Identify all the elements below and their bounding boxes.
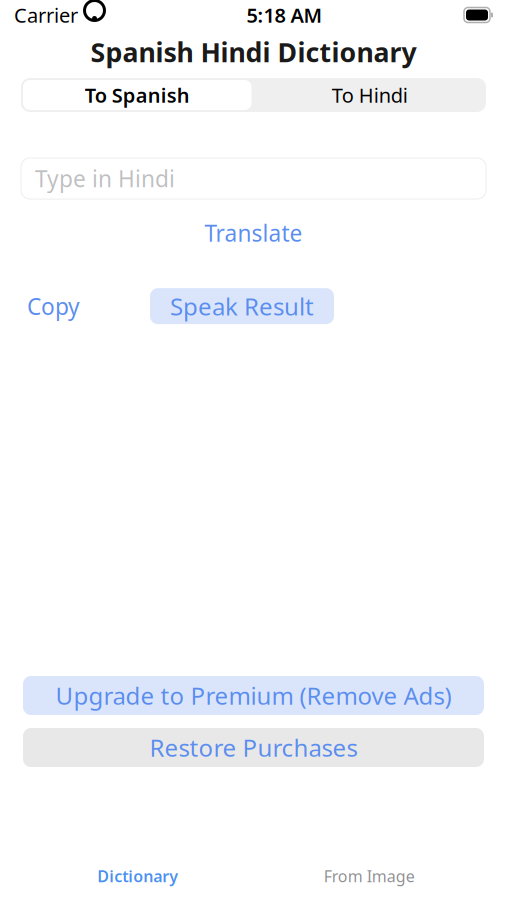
staticText: Spanish Hindi Dictionary [90, 34, 416, 70]
button[interactable]: Dictionary [22, 852, 253, 900]
staticText: To Spanish [85, 82, 190, 108]
staticText: Carrier [14, 2, 78, 28]
staticText: Copy [27, 291, 80, 321]
button[interactable]: Translate [194, 212, 312, 254]
button[interactable]: Speak Result [150, 288, 334, 324]
staticText: Restore Purchases [149, 732, 357, 763]
staticText: Speak Result [170, 290, 314, 322]
staticText: Translate [204, 218, 302, 248]
button[interactable]: To Hindi [253, 78, 486, 112]
staticText: Type in Hindi [35, 163, 175, 193]
button[interactable]: Copy [23, 283, 84, 329]
staticText: From Image [324, 865, 415, 887]
button[interactable]: Restore Purchases [23, 728, 484, 767]
button[interactable]: Upgrade to Premium (Remove Ads) [23, 676, 484, 715]
staticText: 5:18 AM [246, 2, 322, 28]
button[interactable]: To Spanish [21, 78, 253, 112]
staticText: Dictionary [97, 865, 178, 887]
button[interactable]: From Image [253, 852, 485, 900]
staticText: To Hindi [332, 82, 408, 108]
staticText: Upgrade to Premium (Remove Ads) [55, 680, 451, 711]
